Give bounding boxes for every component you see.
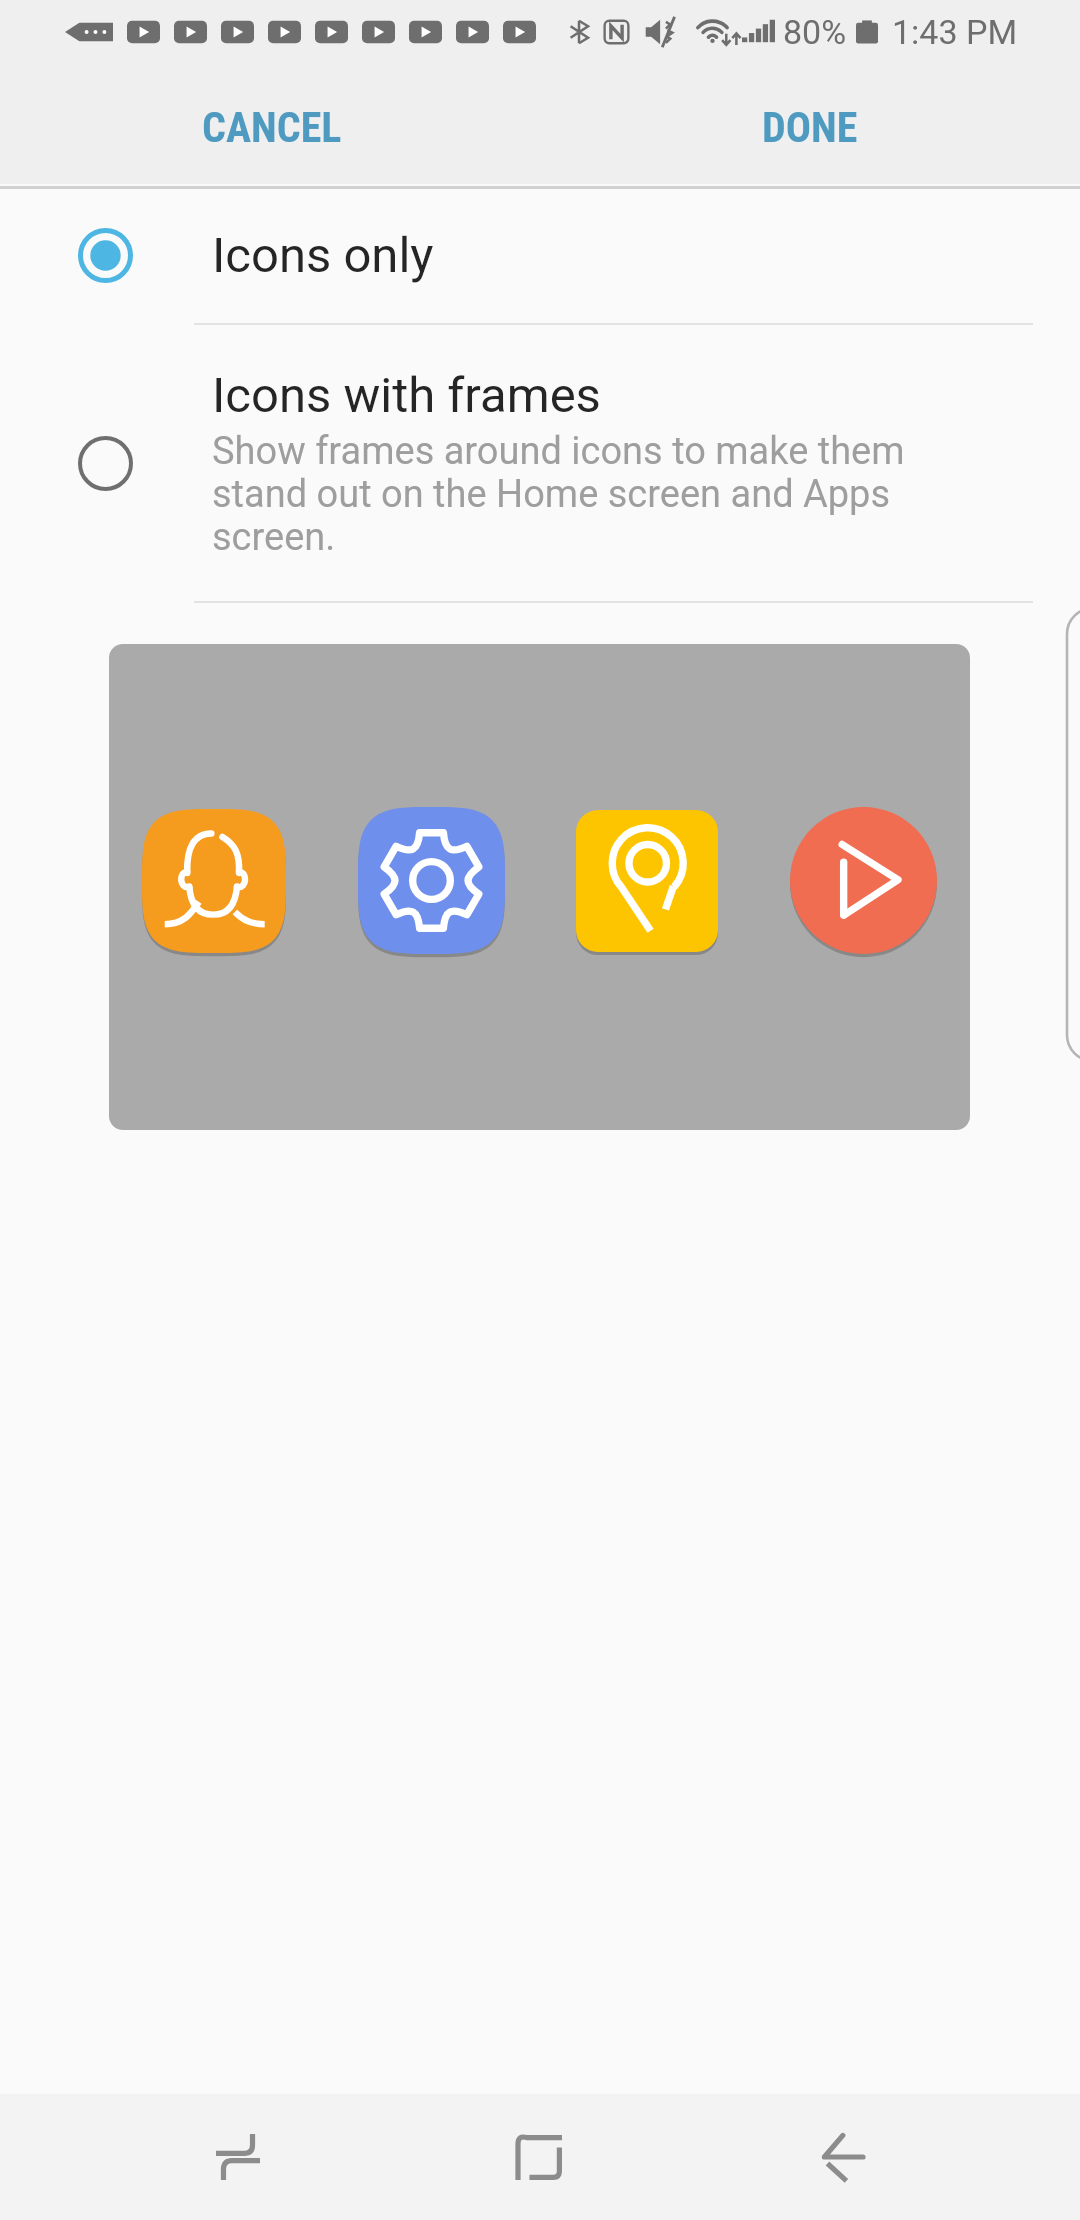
staticText: 80%: [783, 12, 847, 52]
button[interactable]: Icons only: [0, 188, 1080, 323]
button[interactable]: Icons with frames: [0, 325, 1080, 601]
staticText: DONE: [762, 103, 858, 152]
staticText: 1:43 PM: [892, 12, 1018, 52]
staticText: Show frames around icons to make them st…: [212, 429, 912, 559]
button[interactable]: DONE: [762, 64, 858, 190]
staticText: CANCEL: [202, 103, 342, 152]
staticText: Icons with frames: [212, 367, 601, 424]
button[interactable]: CANCEL: [202, 64, 342, 190]
button[interactable]: Recent apps: [87, 2094, 389, 2220]
staticText: Icons only: [212, 227, 434, 284]
button[interactable]: Home: [389, 2094, 691, 2220]
button[interactable]: Back: [691, 2094, 993, 2220]
